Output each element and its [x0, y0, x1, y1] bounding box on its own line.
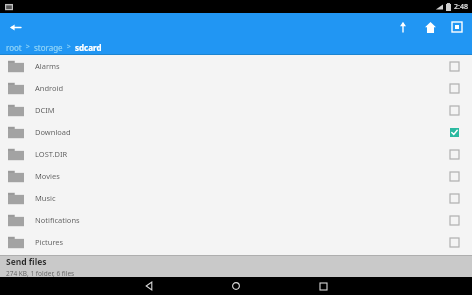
button[interactable]: Podcasts [0, 253, 472, 275]
staticText: 274 KB, 1 folder, 6 files [6, 269, 75, 277]
staticText: Notifications [35, 215, 80, 225]
button[interactable]: Select Music [444, 188, 464, 208]
button[interactable]: Selected Download [444, 122, 464, 142]
staticText: DCIM [35, 105, 55, 115]
staticText: 2:48 [454, 2, 468, 12]
button[interactable]: Notifications [0, 209, 472, 231]
button[interactable]: Download [0, 121, 472, 143]
button[interactable]: DCIM [0, 99, 472, 121]
button[interactable]: Select Movies [444, 166, 464, 186]
staticText: Pictures [35, 237, 64, 247]
button[interactable]: Alarms [0, 55, 472, 77]
button[interactable]: Home [227, 277, 245, 295]
staticText: Send files [6, 256, 47, 268]
button[interactable]: Select Podcasts [444, 254, 464, 274]
button[interactable]: Ringtones [0, 275, 472, 277]
button[interactable]: Select Android [444, 78, 464, 98]
staticText: Ringtones [35, 275, 71, 277]
button[interactable]: Back [4, 16, 26, 38]
button[interactable]: Recents [314, 277, 332, 295]
button[interactable]: Movies [0, 165, 472, 187]
button[interactable]: Select Pictures [444, 232, 464, 252]
staticText: > [63, 42, 75, 52]
button[interactable]: Storage [446, 16, 468, 38]
button[interactable]: Select DCIM [444, 100, 464, 120]
button[interactable]: Back [140, 277, 158, 295]
button[interactable]: Up [392, 16, 414, 38]
staticText: LOST.DIR [35, 149, 68, 159]
button[interactable]: Music [0, 187, 472, 209]
button[interactable]: storage [34, 42, 63, 53]
staticText: Music [35, 193, 56, 203]
staticText: Alarms [35, 61, 60, 71]
button[interactable]: Select Alarms [444, 56, 464, 76]
staticText: > [22, 42, 34, 52]
button[interactable]: Send files [0, 255, 472, 277]
staticText: Movies [35, 171, 60, 181]
button[interactable]: Android [0, 77, 472, 99]
button[interactable]: Select LOST.DIR [444, 144, 464, 164]
button[interactable]: sdcard [75, 42, 102, 53]
button[interactable]: root [6, 42, 22, 53]
staticText: Podcasts [35, 259, 67, 269]
staticText: Android [35, 83, 64, 93]
button[interactable]: Pictures [0, 231, 472, 253]
staticText: Download [35, 127, 71, 137]
button[interactable]: LOST.DIR [0, 143, 472, 165]
button[interactable]: Select Notifications [444, 210, 464, 230]
button[interactable]: Home [419, 16, 441, 38]
